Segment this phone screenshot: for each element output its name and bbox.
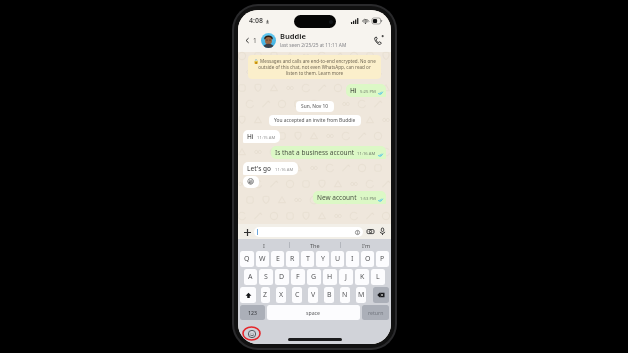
button[interactable]: R: [286, 251, 299, 267]
button[interactable]: V: [308, 287, 318, 303]
staticText: G: [311, 272, 317, 282]
button[interactable]: Hi: [243, 130, 280, 143]
staticText: X: [279, 290, 284, 300]
staticText: A: [248, 272, 253, 282]
button[interactable]: return: [362, 305, 389, 320]
staticText: 🔒 Messages and calls are end-to-end encr…: [253, 58, 376, 76]
button[interactable]: I: [238, 239, 289, 251]
staticText: F: [296, 272, 300, 282]
button[interactable]: Attach: [242, 227, 252, 237]
staticText: 😁: [247, 178, 255, 186]
button[interactable]: The: [290, 239, 340, 251]
button[interactable]: Is that a business account: [271, 146, 386, 159]
staticText: 123: [248, 309, 257, 316]
button[interactable]: B: [324, 287, 334, 303]
staticText: I'm: [362, 242, 371, 249]
staticText: New account: [317, 193, 357, 202]
staticText: Y: [321, 254, 325, 264]
staticText: I: [263, 242, 265, 249]
staticText: N: [342, 290, 348, 300]
button[interactable]: H: [323, 269, 337, 285]
button[interactable]: Emoji keyboard: [247, 329, 256, 338]
staticText: last seen 2/25/25 at 11:11 AM: [280, 42, 347, 49]
staticText: 1:53 PM: [360, 196, 376, 202]
staticText: 1: [253, 36, 257, 45]
button[interactable]: Shift: [240, 287, 256, 303]
other: Back: [244, 37, 251, 44]
staticText: Let's go: [247, 164, 272, 173]
staticText: 5:25 PM: [360, 89, 376, 95]
button[interactable]: I'm: [341, 239, 391, 251]
button[interactable]: Video call: [370, 32, 386, 48]
staticText: return: [368, 309, 384, 316]
staticText: 4:08: [249, 16, 263, 26]
button[interactable]: Y: [316, 251, 329, 267]
button[interactable]: Hi: [346, 84, 386, 97]
staticText: Hi: [247, 132, 254, 141]
button[interactable]: Back: [243, 34, 258, 47]
button[interactable]: G: [307, 269, 321, 285]
button[interactable]: Q: [240, 251, 254, 267]
button[interactable]: space: [267, 305, 360, 320]
staticText: B: [327, 290, 332, 300]
staticText: R: [290, 254, 295, 264]
staticText: E: [276, 254, 280, 264]
button[interactable]: You accepted an invite from Buddie: [269, 115, 361, 126]
button[interactable]: J: [339, 269, 353, 285]
staticText: space: [306, 309, 321, 316]
button[interactable]: K: [355, 269, 369, 285]
staticText: 11:16 AM: [275, 167, 294, 173]
button[interactable]: N: [340, 287, 350, 303]
button[interactable]: L: [371, 269, 385, 285]
staticText: Z: [263, 290, 268, 300]
button[interactable]: U: [331, 251, 344, 267]
button[interactable]: X: [276, 287, 286, 303]
staticText: I: [351, 254, 354, 264]
button[interactable]: [261, 33, 276, 48]
button[interactable]: C: [292, 287, 302, 303]
staticText: P: [380, 254, 385, 264]
staticText: M: [358, 290, 365, 300]
staticText: J: [345, 272, 347, 282]
button[interactable]: I: [346, 251, 359, 267]
button[interactable]: D: [275, 269, 289, 285]
staticText: K: [360, 272, 365, 282]
button[interactable]: S: [259, 269, 273, 285]
button[interactable]: Voice message: [378, 227, 387, 236]
button[interactable]: Camera: [366, 227, 375, 236]
staticText: C: [295, 290, 300, 300]
staticText: Buddie: [280, 31, 307, 41]
button[interactable]: New account: [313, 191, 386, 204]
button[interactable]: Let's go: [243, 162, 298, 175]
button[interactable]: P: [376, 251, 389, 267]
staticText: S: [264, 272, 268, 282]
button[interactable]: A: [244, 269, 257, 285]
button[interactable]: O: [361, 251, 374, 267]
button[interactable]: Sun, Nov 10: [296, 101, 334, 112]
button[interactable]: Backspace: [373, 287, 389, 303]
button[interactable]: 🔒 Messages and calls are end-to-end encr…: [248, 55, 381, 79]
staticText: Q: [244, 254, 250, 264]
staticText: D: [279, 272, 285, 282]
staticText: T: [306, 254, 310, 264]
staticText: 11:16 AM: [357, 151, 376, 157]
staticText: H: [327, 272, 333, 282]
button[interactable]: [254, 227, 363, 237]
staticText: 11:15 AM: [257, 135, 276, 141]
button[interactable]: Buddie: [280, 31, 370, 49]
staticText: Hi: [350, 86, 357, 95]
staticText: The: [310, 242, 320, 249]
staticText: O: [365, 254, 371, 264]
button[interactable]: F: [291, 269, 305, 285]
button[interactable]: W: [256, 251, 269, 267]
button[interactable]: Z: [261, 287, 270, 303]
button[interactable]: T: [301, 251, 314, 267]
button[interactable]: 😁: [243, 176, 259, 188]
staticText: Sun, Nov 10: [301, 103, 329, 110]
button[interactable]: E: [271, 251, 284, 267]
staticText: U: [335, 254, 341, 264]
button[interactable]: M: [356, 287, 366, 303]
staticText: W: [259, 254, 266, 264]
staticText: V: [311, 290, 316, 300]
button[interactable]: 123: [240, 305, 265, 320]
